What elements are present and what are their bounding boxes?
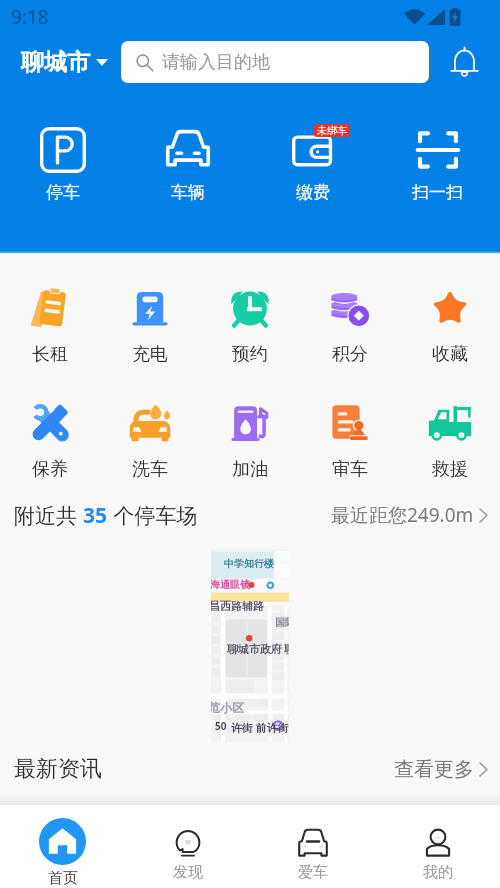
staticText: 未绑车 xyxy=(317,124,347,137)
staticText: 50 xyxy=(215,719,227,733)
staticText: 许街 前许街 xyxy=(231,720,289,735)
staticText: 审车 xyxy=(332,458,368,481)
staticText: 查看更多 xyxy=(394,757,474,782)
staticText: 发现 xyxy=(173,863,203,882)
staticText: 国际 xyxy=(275,616,289,629)
button[interactable]: 车辆 xyxy=(125,120,250,206)
button[interactable]: 长租 xyxy=(0,285,100,366)
button[interactable]: 加油 xyxy=(200,400,300,481)
button[interactable]: 扫一扫 xyxy=(375,120,500,206)
button[interactable]: 预约 xyxy=(200,285,300,366)
button[interactable]: 请输入目的地 xyxy=(121,41,429,83)
button[interactable]: 聊城市 xyxy=(21,48,108,77)
staticText: 缴费 xyxy=(296,182,330,203)
staticText: 聊城市 xyxy=(21,48,90,77)
button[interactable]: 首页 xyxy=(0,805,125,888)
button[interactable]: 爱车 xyxy=(250,805,375,888)
staticText: 范小区 xyxy=(211,700,244,715)
button[interactable]: 最近距您249.0m xyxy=(331,502,488,528)
button[interactable]: 发现 xyxy=(125,805,250,888)
staticText: 请输入目的地 xyxy=(162,51,270,74)
staticText: 加油 xyxy=(232,458,268,481)
staticText: 9:18 xyxy=(11,4,49,30)
button[interactable]: 积分 xyxy=(300,285,400,366)
button[interactable]: 收藏 xyxy=(400,285,500,366)
button[interactable]: 洗车 xyxy=(100,400,200,481)
staticText: 我的 xyxy=(423,863,453,882)
staticText: 车辆 xyxy=(171,182,205,203)
staticText: 附近共 xyxy=(14,501,83,530)
button[interactable]: 未绑车 xyxy=(250,120,375,206)
staticText: 预约 xyxy=(232,343,268,366)
staticText: 救援 xyxy=(432,458,468,481)
staticText: 扫一扫 xyxy=(412,182,463,203)
staticText: 聊 xyxy=(284,642,289,656)
staticText: 首页 xyxy=(48,869,78,888)
staticText: 中学知行楼 xyxy=(224,557,274,570)
button[interactable]: 查看更多 xyxy=(394,757,488,782)
staticText: 最近距您249.0m xyxy=(331,502,474,528)
staticText: 最新资讯 xyxy=(14,755,102,783)
staticText: 收藏 xyxy=(432,343,468,366)
button[interactable]: 充电 xyxy=(100,285,200,366)
staticText: 爱车 xyxy=(298,863,328,882)
staticText: 充电 xyxy=(132,343,168,366)
staticText: 个停车场 xyxy=(108,501,198,530)
button[interactable]: Notifications xyxy=(429,41,500,83)
staticText: 长租 xyxy=(32,343,68,366)
button[interactable]: 保养 xyxy=(0,400,100,481)
staticText: 保养 xyxy=(32,458,68,481)
staticText: 积分 xyxy=(332,343,368,366)
staticText: 35 xyxy=(83,501,108,530)
button[interactable]: 停车 xyxy=(0,120,125,206)
button[interactable]: 救援 xyxy=(400,400,500,481)
button[interactable]: 中学知行楼 xyxy=(211,549,289,742)
staticText: 洗车 xyxy=(132,458,168,481)
button[interactable]: 我的 xyxy=(375,805,500,888)
staticText: 停车 xyxy=(46,182,80,203)
staticText: 海通眼镜 xyxy=(211,578,250,591)
staticText: 昌西路辅路 xyxy=(211,599,264,613)
staticText: 聊城市政府 xyxy=(227,642,282,656)
button[interactable]: 审车 xyxy=(300,400,400,481)
